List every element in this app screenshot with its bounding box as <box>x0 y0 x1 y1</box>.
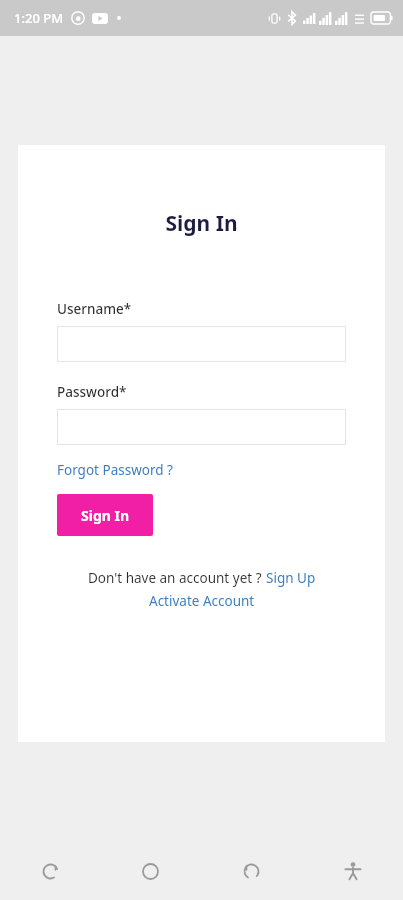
staticText: Activate Account <box>149 592 255 610</box>
staticText: Sign In <box>18 209 385 238</box>
staticText: Username* <box>57 300 132 318</box>
button[interactable] <box>57 409 346 445</box>
button[interactable]: Accessibility <box>302 842 403 900</box>
staticText: Sign Up <box>266 569 316 587</box>
button[interactable]: Back <box>0 842 100 900</box>
button[interactable] <box>57 326 346 362</box>
button[interactable]: Sign Up <box>266 569 316 587</box>
staticText: Forgot Password ? <box>57 461 173 479</box>
staticText: Don't have an account yet ? <box>88 569 262 587</box>
button[interactable]: Home <box>100 842 201 900</box>
button[interactable]: Forgot Password ? <box>57 461 173 479</box>
staticText: Sign In <box>81 506 130 525</box>
button[interactable]: Sign In <box>57 494 153 536</box>
button[interactable]: Activate Account <box>149 592 255 610</box>
staticText: Password* <box>57 383 127 401</box>
staticText: 1:20 PM <box>14 9 64 27</box>
button[interactable]: Recent apps <box>201 842 302 900</box>
